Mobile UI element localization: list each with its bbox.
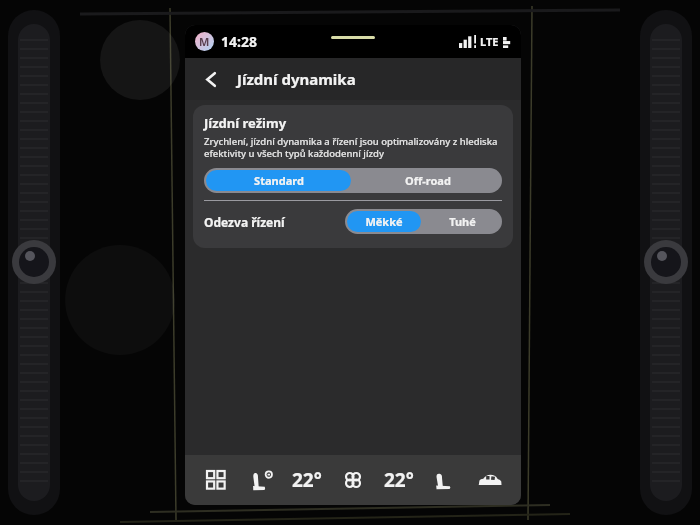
staticText: Měkké	[365, 214, 403, 229]
button[interactable]: Standard	[206, 170, 351, 191]
button[interactable]: Apps	[199, 459, 233, 501]
staticText: Off-road	[405, 173, 451, 188]
staticText: Jízdní režimy	[204, 114, 287, 132]
staticText: 22°	[384, 467, 414, 493]
button[interactable]: Passenger seat	[427, 459, 461, 501]
button[interactable]: Car	[473, 459, 507, 501]
staticText: Standard	[254, 173, 304, 188]
staticText: Zrychlení, jízdní dynamika a řízení jsou…	[204, 135, 498, 160]
staticText: M	[199, 34, 210, 49]
button[interactable]: Měkké	[347, 211, 421, 232]
button[interactable]: Tuhé	[425, 211, 500, 232]
button[interactable]: Back	[195, 63, 227, 95]
staticText: 22°	[292, 467, 322, 493]
staticText: 14:28	[221, 32, 257, 51]
staticText: LTE	[480, 34, 499, 49]
button[interactable]: Fan	[336, 459, 370, 501]
staticText: Tuhé	[449, 214, 476, 229]
staticText: Jízdní dynamika	[237, 69, 356, 89]
button[interactable]: 22°	[382, 459, 416, 501]
staticText: Odezva řízení	[204, 214, 285, 230]
button[interactable]: Off-road	[355, 170, 500, 191]
button[interactable]: Driver seat heater	[245, 459, 279, 501]
button[interactable]: 22°	[290, 459, 324, 501]
